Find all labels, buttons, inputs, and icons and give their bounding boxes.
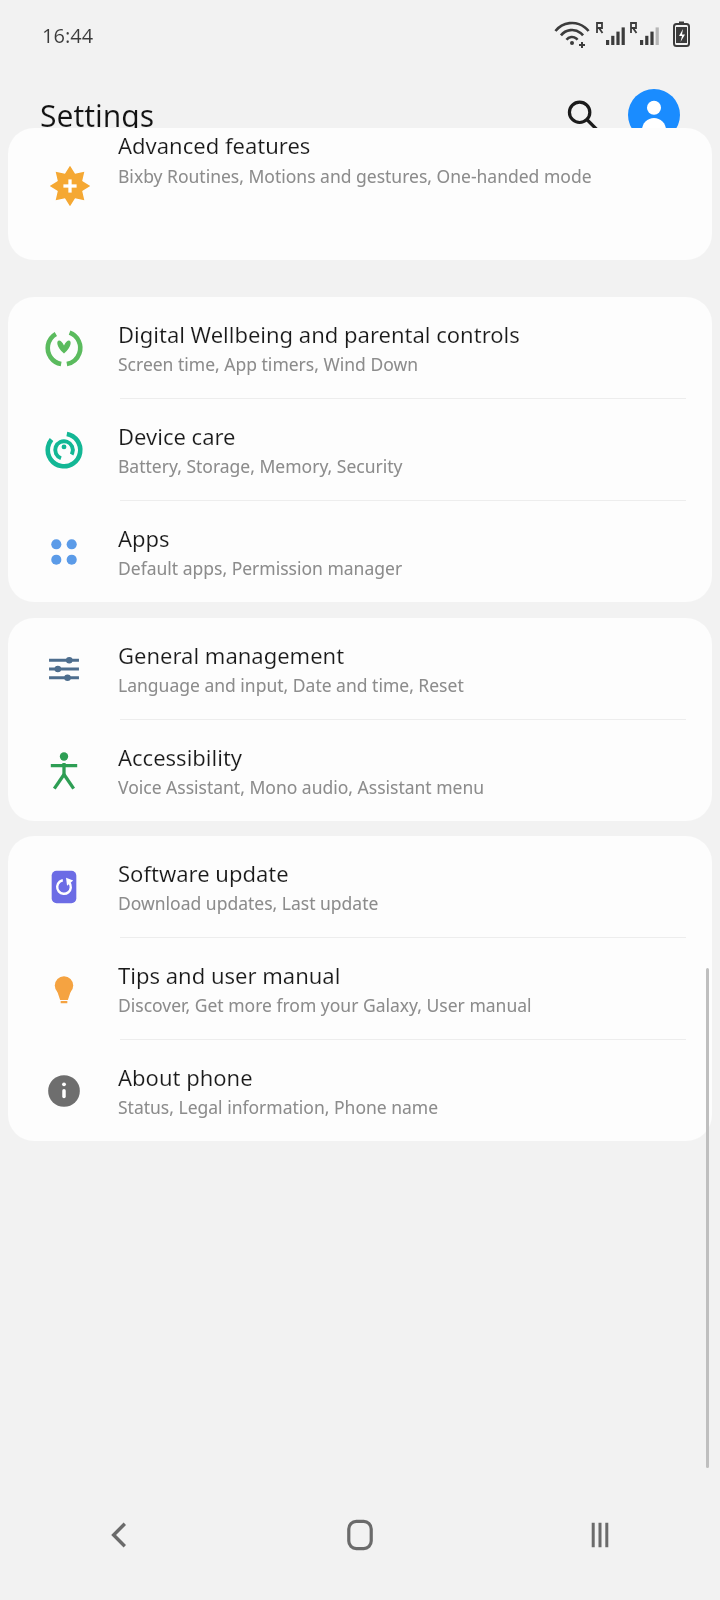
button[interactable]: Back: [0, 1470, 240, 1600]
staticText: About phone: [118, 1062, 253, 1092]
button[interactable]: General management: [8, 618, 712, 719]
staticText: 16:44: [42, 22, 94, 49]
button[interactable]: Software update: [8, 836, 712, 937]
staticText: Digital Wellbeing and parental controls: [118, 319, 520, 349]
button[interactable]: Advanced features: [8, 128, 712, 260]
button[interactable]: Device care: [8, 399, 712, 500]
button[interactable]: Recents: [480, 1470, 720, 1600]
staticText: Status, Legal information, Phone name: [118, 1095, 439, 1119]
button[interactable]: Digital Wellbeing and parental controls: [8, 297, 712, 398]
staticText: Software update: [118, 858, 289, 888]
button[interactable]: Accessibility: [8, 720, 712, 821]
staticText: Voice Assistant, Mono audio, Assistant m…: [118, 775, 485, 799]
staticText: Language and input, Date and time, Reset: [118, 673, 464, 697]
staticText: Apps: [118, 523, 170, 553]
button[interactable]: Account: [628, 89, 680, 141]
button[interactable]: Tips and user manual: [8, 938, 712, 1039]
button[interactable]: Search: [554, 87, 610, 143]
staticText: Screen time, App timers, Wind Down: [118, 352, 418, 376]
staticText: Settings: [40, 95, 155, 136]
staticText: General management: [118, 640, 345, 670]
staticText: Accessibility: [118, 742, 243, 772]
staticText: Default apps, Permission manager: [118, 556, 403, 580]
staticText: Tips and user manual: [118, 960, 341, 990]
staticText: Device care: [118, 421, 236, 451]
staticText: Download updates, Last update: [118, 891, 379, 915]
button[interactable]: Home: [240, 1470, 480, 1600]
staticText: Advanced features: [118, 130, 311, 160]
staticText: Discover, Get more from your Galaxy, Use…: [118, 993, 532, 1017]
staticText: Battery, Storage, Memory, Security: [118, 454, 403, 478]
button[interactable]: About phone: [8, 1040, 712, 1141]
button[interactable]: Apps: [8, 501, 712, 602]
staticText: Bixby Routines, Motions and gestures, On…: [118, 164, 592, 188]
